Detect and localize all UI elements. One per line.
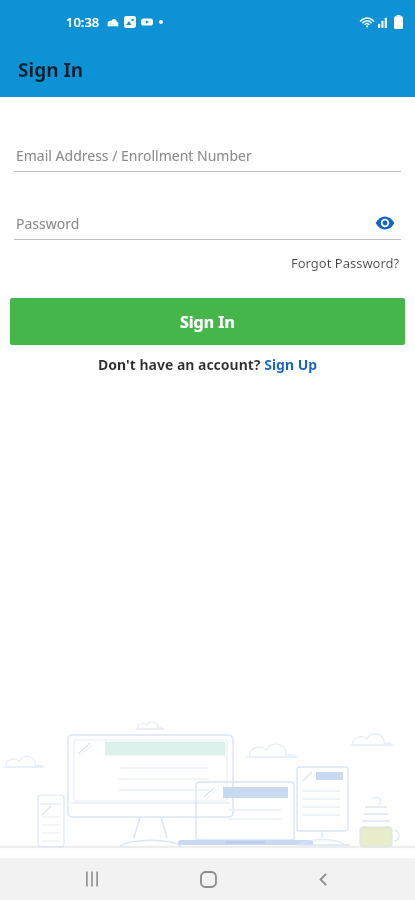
staticText: Don't have an account? Sign Up: [98, 355, 318, 374]
button[interactable]: Email Address / Enrollment Number: [16, 139, 399, 171]
staticText: Forgot Password?: [291, 254, 400, 272]
button[interactable]: Back: [299, 858, 347, 900]
staticText: Email Address / Enrollment Number: [16, 146, 252, 165]
button[interactable]: Home: [184, 858, 232, 900]
button[interactable]: Recent apps: [68, 858, 116, 900]
staticText: Password: [16, 214, 80, 233]
button[interactable]: Show password: [371, 209, 399, 237]
button[interactable]: Sign In: [10, 298, 405, 345]
staticText: 10:38: [66, 13, 100, 31]
staticText: Sign In: [18, 57, 84, 83]
button[interactable]: Don't have an account? Sign Up: [0, 355, 415, 374]
button[interactable]: Forgot Password?: [276, 250, 415, 276]
button[interactable]: Password: [16, 207, 399, 239]
staticText: Sign In: [180, 311, 235, 333]
